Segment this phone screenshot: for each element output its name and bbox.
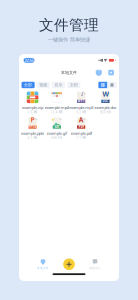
button[interactable]: example.zip — [20, 91, 45, 114]
button[interactable]: example.mp4 — [45, 91, 69, 114]
button[interactable]: 消息中心 — [82, 257, 108, 271]
staticText: example.mp3 — [69, 105, 93, 110]
staticText: example.zip — [22, 105, 43, 110]
staticText: 本地文件 — [37, 266, 49, 270]
staticText: example.gif — [47, 130, 67, 136]
button[interactable]: List view — [107, 82, 116, 88]
button[interactable]: 全部 — [21, 82, 35, 88]
button[interactable]: GIF — [45, 117, 69, 140]
staticText: DOC — [102, 100, 108, 103]
button[interactable]: 本地文件 — [30, 257, 56, 271]
button[interactable]: P — [20, 117, 45, 140]
button[interactable]: Grid view — [98, 82, 107, 88]
staticText: 文档 — [70, 82, 78, 87]
staticText: 12.4 MB — [51, 110, 63, 114]
staticText: 一键操作 简单快捷 — [48, 36, 90, 43]
button[interactable]: W — [93, 91, 118, 114]
staticText: 1.1 MB — [76, 136, 86, 140]
staticText: PPTX — [28, 125, 36, 129]
staticText: P — [30, 115, 34, 124]
staticText: 3.2 MB — [76, 110, 86, 114]
staticText: 22:55 — [25, 58, 34, 63]
staticText: 2.1 MB — [27, 136, 37, 140]
staticText: 音乐 — [54, 82, 62, 87]
staticText: 640 KB — [51, 136, 62, 140]
staticText: 全部 — [24, 82, 32, 87]
staticText: 消息中心 — [89, 266, 101, 270]
button[interactable]: Edit — [107, 69, 115, 76]
button[interactable]: Add file — [58, 257, 80, 271]
staticText: W — [102, 89, 108, 98]
button[interactable]: 文档 — [67, 82, 80, 88]
staticText: 820 KB — [100, 110, 111, 114]
staticText: 本地文件 — [61, 70, 77, 75]
staticText: example.doc — [94, 105, 116, 110]
staticText: 1.5 MB — [27, 110, 37, 114]
button[interactable]: Security scan — [95, 69, 102, 76]
staticText: PDF — [79, 125, 84, 129]
button[interactable]: A — [69, 117, 93, 140]
staticText: example.mp4 — [45, 105, 69, 110]
staticText: GIF — [55, 125, 59, 129]
staticText: example.pdf — [71, 130, 92, 136]
staticText: A — [79, 115, 84, 124]
staticText: 文件管理 — [39, 16, 99, 34]
staticText: example.pptx — [21, 130, 44, 136]
button[interactable]: 视频 — [37, 82, 50, 88]
button[interactable]: 音乐 — [52, 82, 65, 88]
button[interactable]: MP3 — [69, 91, 93, 114]
staticText: MP3 — [78, 100, 85, 103]
staticText: 视频 — [39, 82, 47, 87]
